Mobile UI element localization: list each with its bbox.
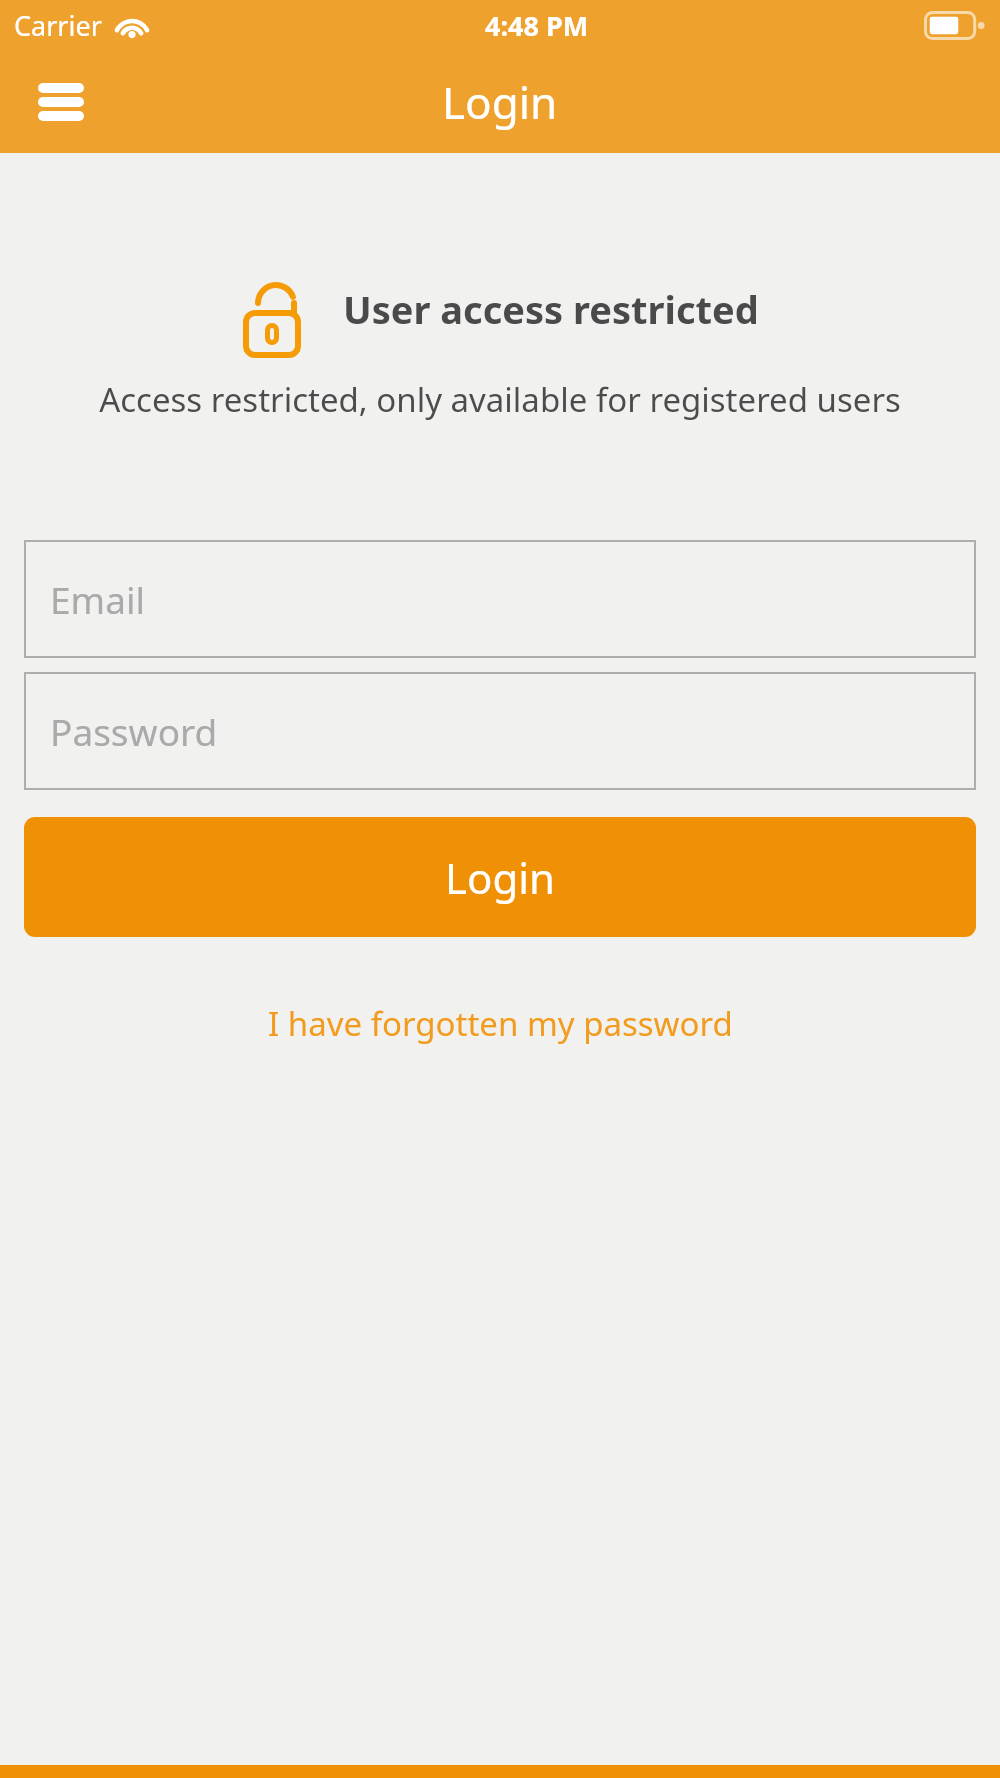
button[interactable]: I have forgotten my password xyxy=(24,993,976,1054)
button[interactable]: Email xyxy=(24,540,976,658)
staticText: Carrier xyxy=(14,7,102,44)
button[interactable]: Login xyxy=(24,817,976,937)
staticText: 4:48 PM xyxy=(485,7,589,44)
button[interactable]: Password xyxy=(24,672,976,790)
button[interactable]: Menu xyxy=(26,70,96,134)
staticText: Access restricted, only available for re… xyxy=(0,377,1000,422)
staticText: User access restricted xyxy=(343,283,759,335)
staticText: Password xyxy=(50,706,218,756)
staticText: I have forgotten my password xyxy=(268,1001,733,1046)
staticText: Email xyxy=(50,574,146,624)
staticText: Login xyxy=(445,849,556,906)
staticText: Login xyxy=(442,72,558,132)
